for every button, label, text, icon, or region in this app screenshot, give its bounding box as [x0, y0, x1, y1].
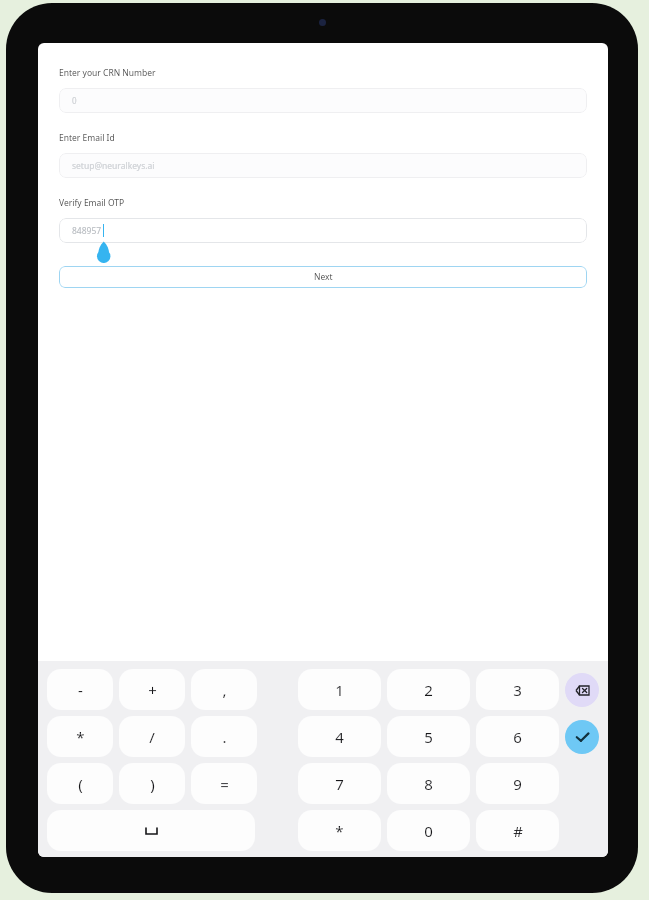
staticText: 2: [424, 680, 433, 700]
button[interactable]: 1: [298, 669, 381, 710]
button[interactable]: 848957: [59, 218, 587, 243]
button[interactable]: *: [47, 716, 113, 757]
staticText: 0: [424, 821, 433, 841]
staticText: 7: [335, 774, 344, 794]
button[interactable]: ): [119, 763, 185, 804]
button[interactable]: -: [47, 669, 113, 710]
staticText: 6: [513, 727, 522, 747]
button[interactable]: Space: [47, 810, 255, 851]
staticText: 5: [424, 727, 433, 747]
button[interactable]: *: [298, 810, 381, 851]
staticText: 848957: [72, 225, 102, 237]
staticText: Next: [314, 271, 333, 283]
button[interactable]: Next: [59, 266, 587, 288]
staticText: setup@neuralkeys.ai: [72, 160, 155, 172]
staticText: 0: [72, 95, 77, 106]
staticText: +: [148, 680, 157, 700]
button[interactable]: Enter: [565, 720, 599, 754]
staticText: 9: [513, 774, 522, 794]
button[interactable]: 9: [476, 763, 559, 804]
staticText: ,: [222, 680, 227, 700]
button[interactable]: (: [47, 763, 113, 804]
button[interactable]: 8: [387, 763, 470, 804]
button[interactable]: #: [476, 810, 559, 851]
staticText: 8: [424, 774, 433, 794]
staticText: Enter your CRN Number: [59, 67, 156, 79]
button[interactable]: Backspace: [565, 673, 599, 707]
staticText: Verify Email OTP: [59, 197, 125, 209]
staticText: *: [335, 821, 344, 841]
staticText: 4: [335, 727, 344, 747]
staticText: #: [513, 821, 523, 841]
staticText: *: [76, 727, 85, 747]
staticText: (: [78, 774, 83, 794]
button[interactable]: 3: [476, 669, 559, 710]
staticText: 1: [335, 680, 344, 700]
button[interactable]: .: [191, 716, 257, 757]
staticText: -: [78, 680, 83, 700]
button[interactable]: 6: [476, 716, 559, 757]
staticText: 3: [513, 680, 522, 700]
button[interactable]: 5: [387, 716, 470, 757]
button[interactable]: 0: [59, 88, 587, 113]
staticText: ): [150, 774, 155, 794]
staticText: /: [149, 727, 155, 747]
button[interactable]: /: [119, 716, 185, 757]
button[interactable]: +: [119, 669, 185, 710]
button[interactable]: 7: [298, 763, 381, 804]
button[interactable]: 4: [298, 716, 381, 757]
staticText: .: [222, 727, 227, 747]
button[interactable]: ,: [191, 669, 257, 710]
button[interactable]: 2: [387, 669, 470, 710]
button[interactable]: 0: [387, 810, 470, 851]
staticText: =: [220, 774, 229, 794]
staticText: Enter Email Id: [59, 132, 115, 144]
button[interactable]: setup@neuralkeys.ai: [59, 153, 587, 178]
button[interactable]: =: [191, 763, 257, 804]
